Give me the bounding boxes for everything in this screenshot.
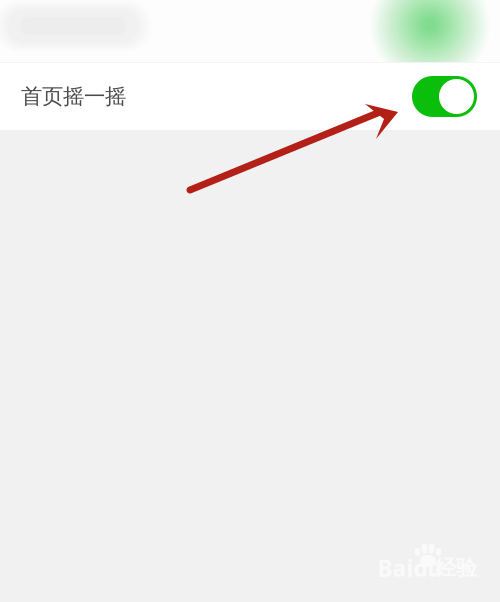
staticText: Baidu: [377, 553, 442, 583]
staticText: 首页摇一摇: [21, 83, 126, 110]
button[interactable]: 首页摇一摇: [0, 63, 500, 130]
staticText: 经验: [435, 555, 477, 581]
button[interactable]: 设置项: [0, 0, 500, 62]
button[interactable]: 首页摇一摇, 开: [412, 76, 477, 117]
